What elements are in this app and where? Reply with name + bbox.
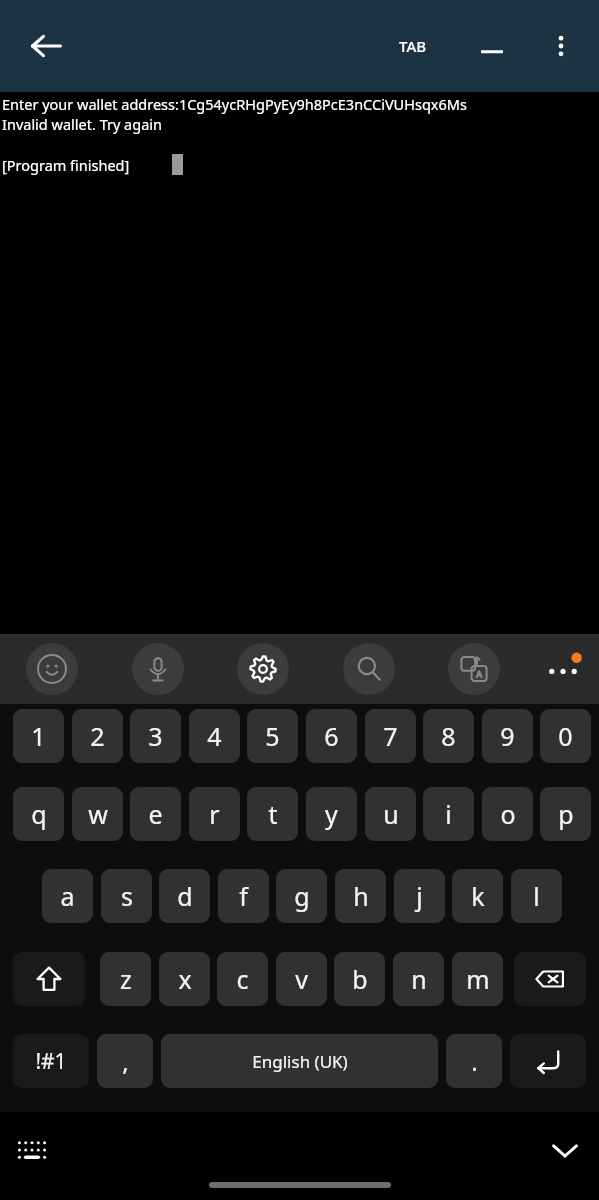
button[interactable]: d [159, 869, 210, 923]
staticText: 1 [31, 719, 46, 753]
staticText: w [88, 797, 108, 831]
staticText: p [558, 797, 574, 831]
button[interactable]: t [247, 787, 298, 841]
button[interactable]: i [423, 787, 474, 841]
button[interactable]: Translate [448, 643, 500, 695]
staticText: 2 [90, 719, 105, 753]
button[interactable]: h [335, 869, 386, 923]
button[interactable]: z [100, 952, 151, 1006]
button[interactable]: r [189, 787, 240, 841]
button[interactable]: 7 [365, 709, 416, 763]
staticText: b [352, 962, 368, 996]
button[interactable]: Back [18, 18, 74, 74]
staticText: c [236, 962, 249, 996]
button[interactable]: c [217, 952, 268, 1006]
button[interactable]: More keyboard options [537, 643, 589, 695]
button[interactable]: o [482, 787, 533, 841]
button[interactable]: English (UK) [161, 1034, 438, 1088]
staticText: d [177, 879, 193, 913]
staticText: i [445, 797, 452, 831]
staticText: n [411, 962, 427, 996]
button[interactable]: q [13, 787, 64, 841]
staticText: a [60, 879, 75, 913]
button[interactable]: 4 [189, 709, 240, 763]
button[interactable]: Settings [237, 643, 289, 695]
button[interactable]: 1 [13, 709, 64, 763]
button[interactable]: 8 [423, 709, 474, 763]
button[interactable]: More options [535, 20, 587, 72]
staticText: o [500, 797, 516, 831]
staticText: 6 [324, 719, 339, 753]
staticText: z [120, 962, 132, 996]
button[interactable]: Change keyboard [6, 1124, 58, 1176]
staticText: 4 [207, 719, 222, 753]
button[interactable]: . [446, 1034, 502, 1088]
staticText: j [416, 879, 423, 913]
button[interactable]: TAB [382, 18, 444, 74]
button[interactable]: Backspace [514, 952, 586, 1006]
button[interactable]: Minimize [466, 20, 518, 72]
staticText: e [148, 797, 163, 831]
staticText: , [122, 1045, 129, 1078]
staticText: m [466, 962, 490, 996]
button[interactable]: g [276, 869, 327, 923]
staticText: q [31, 797, 47, 831]
button[interactable]: j [394, 869, 445, 923]
button[interactable]: 6 [306, 709, 357, 763]
staticText: y [325, 797, 338, 831]
button[interactable]: 0 [540, 709, 591, 763]
staticText: g [294, 879, 310, 913]
button[interactable]: l [511, 869, 562, 923]
staticText: 3 [148, 719, 163, 753]
staticText: f [239, 879, 248, 913]
staticText: Enter your wallet address:1Cg54ycRHgPyEy… [2, 94, 467, 114]
button[interactable]: b [334, 952, 385, 1006]
staticText: 9 [500, 719, 515, 753]
staticText: Invalid wallet. Try again [2, 114, 163, 134]
staticText: k [471, 879, 485, 913]
staticText: u [383, 797, 399, 831]
button[interactable]: y [306, 787, 357, 841]
button[interactable]: e [130, 787, 181, 841]
staticText: 5 [265, 719, 280, 753]
button[interactable]: Voice input [132, 643, 184, 695]
button[interactable]: 2 [72, 709, 123, 763]
staticText: English (UK) [252, 1050, 348, 1073]
staticText: TAB [399, 36, 427, 56]
button[interactable]: n [393, 952, 444, 1006]
staticText: [Program finished] [2, 155, 130, 175]
staticText: v [295, 962, 308, 996]
button[interactable]: 5 [247, 709, 298, 763]
button[interactable]: w [72, 787, 123, 841]
staticText: 0 [558, 719, 573, 753]
button[interactable]: x [159, 952, 210, 1006]
button[interactable]: !#1 [13, 1034, 89, 1088]
button[interactable]: , [97, 1034, 153, 1088]
staticText: x [178, 962, 192, 996]
button[interactable]: u [365, 787, 416, 841]
staticText: . [471, 1045, 478, 1078]
staticText: r [209, 797, 220, 831]
button[interactable]: 3 [130, 709, 181, 763]
button[interactable]: Search [343, 643, 395, 695]
button[interactable]: p [540, 787, 591, 841]
button[interactable]: a [42, 869, 93, 923]
button[interactable]: Emoji [26, 643, 78, 695]
staticText: t [268, 797, 278, 831]
button[interactable]: f [218, 869, 269, 923]
button[interactable]: v [276, 952, 327, 1006]
staticText: 8 [441, 719, 456, 753]
button[interactable]: Hide keyboard [539, 1124, 591, 1176]
staticText: 7 [383, 719, 398, 753]
button[interactable]: s [101, 869, 152, 923]
staticText: !#1 [35, 1047, 67, 1076]
button[interactable]: k [452, 869, 503, 923]
button[interactable]: Enter [510, 1034, 586, 1088]
staticText: l [533, 879, 540, 913]
button[interactable]: m [452, 952, 503, 1006]
staticText: s [121, 879, 133, 913]
button[interactable]: 9 [482, 709, 533, 763]
button[interactable]: Shift [13, 952, 85, 1006]
staticText: h [353, 879, 369, 913]
